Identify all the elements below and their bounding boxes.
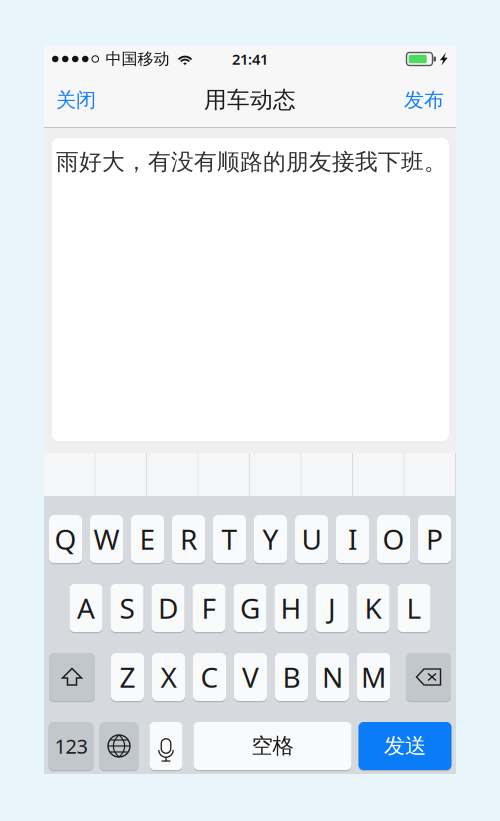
button[interactable]: T bbox=[213, 514, 246, 564]
button[interactable]: G bbox=[233, 583, 266, 633]
staticText: Y bbox=[262, 520, 278, 558]
staticText: Q bbox=[54, 520, 76, 558]
staticText: 雨好大，有没有顺路的朋友接我下班。 bbox=[56, 148, 447, 176]
button[interactable]: U bbox=[295, 514, 328, 564]
button[interactable]: N bbox=[316, 652, 349, 702]
staticText: T bbox=[221, 520, 237, 558]
button[interactable]: M bbox=[357, 652, 390, 702]
button[interactable]: F bbox=[192, 583, 225, 633]
staticText: 发送 bbox=[384, 733, 426, 759]
button[interactable]: Z bbox=[111, 652, 144, 702]
staticText: 用车动态 bbox=[204, 86, 296, 114]
button[interactable]: Y bbox=[254, 514, 287, 564]
staticText: E bbox=[139, 520, 155, 558]
button[interactable]: J bbox=[315, 583, 348, 633]
staticText: V bbox=[242, 658, 259, 696]
staticText: 中国移动 bbox=[105, 49, 169, 69]
button[interactable]: C bbox=[193, 652, 226, 702]
button[interactable]: Q bbox=[49, 514, 82, 564]
button[interactable]: K bbox=[356, 583, 389, 633]
button[interactable]: B bbox=[275, 652, 308, 702]
button[interactable]: S bbox=[110, 583, 143, 633]
staticText: U bbox=[301, 520, 321, 558]
button[interactable]: H bbox=[274, 583, 307, 633]
staticText: Z bbox=[119, 658, 135, 696]
button[interactable]: E bbox=[131, 514, 164, 564]
staticText: A bbox=[77, 589, 95, 627]
button[interactable]: Shift bbox=[49, 652, 95, 702]
staticText: J bbox=[328, 589, 336, 627]
staticText: 关闭 bbox=[56, 88, 96, 112]
staticText: B bbox=[282, 658, 300, 696]
staticText: S bbox=[119, 589, 134, 627]
button[interactable]: R bbox=[172, 514, 205, 564]
staticText: M bbox=[361, 658, 386, 696]
staticText: 123 bbox=[54, 733, 87, 759]
staticText: 21:41 bbox=[232, 49, 268, 69]
button[interactable]: W bbox=[90, 514, 123, 564]
staticText: O bbox=[382, 520, 404, 558]
staticText: K bbox=[364, 589, 381, 627]
staticText: D bbox=[158, 589, 178, 627]
button[interactable]: A bbox=[69, 583, 102, 633]
staticText: R bbox=[180, 520, 197, 558]
button[interactable]: Next keyboard bbox=[99, 721, 138, 771]
staticText: I bbox=[348, 520, 357, 558]
button[interactable]: O bbox=[377, 514, 410, 564]
button[interactable]: 123 bbox=[48, 721, 93, 771]
staticText: X bbox=[160, 658, 176, 696]
button[interactable]: V bbox=[234, 652, 267, 702]
staticText: L bbox=[406, 589, 421, 627]
staticText: F bbox=[201, 589, 216, 627]
staticText: C bbox=[200, 658, 218, 696]
staticText: W bbox=[93, 520, 119, 558]
staticText: 发布 bbox=[404, 88, 444, 112]
staticText: H bbox=[280, 589, 301, 627]
button[interactable]: 发送 bbox=[358, 721, 451, 771]
staticText: 空格 bbox=[251, 733, 293, 759]
staticText: N bbox=[322, 658, 343, 696]
staticText: P bbox=[426, 520, 443, 558]
button[interactable]: D bbox=[151, 583, 184, 633]
button[interactable]: L bbox=[397, 583, 430, 633]
button[interactable]: X bbox=[152, 652, 185, 702]
button[interactable]: P bbox=[418, 514, 451, 564]
button[interactable]: I bbox=[336, 514, 369, 564]
button[interactable]: 发布 bbox=[398, 72, 450, 128]
button[interactable]: Delete bbox=[406, 652, 451, 702]
button[interactable]: Dictate bbox=[149, 721, 182, 771]
staticText: G bbox=[240, 589, 260, 627]
button[interactable]: 关闭 bbox=[50, 72, 102, 128]
button[interactable]: 空格 bbox=[193, 721, 351, 771]
